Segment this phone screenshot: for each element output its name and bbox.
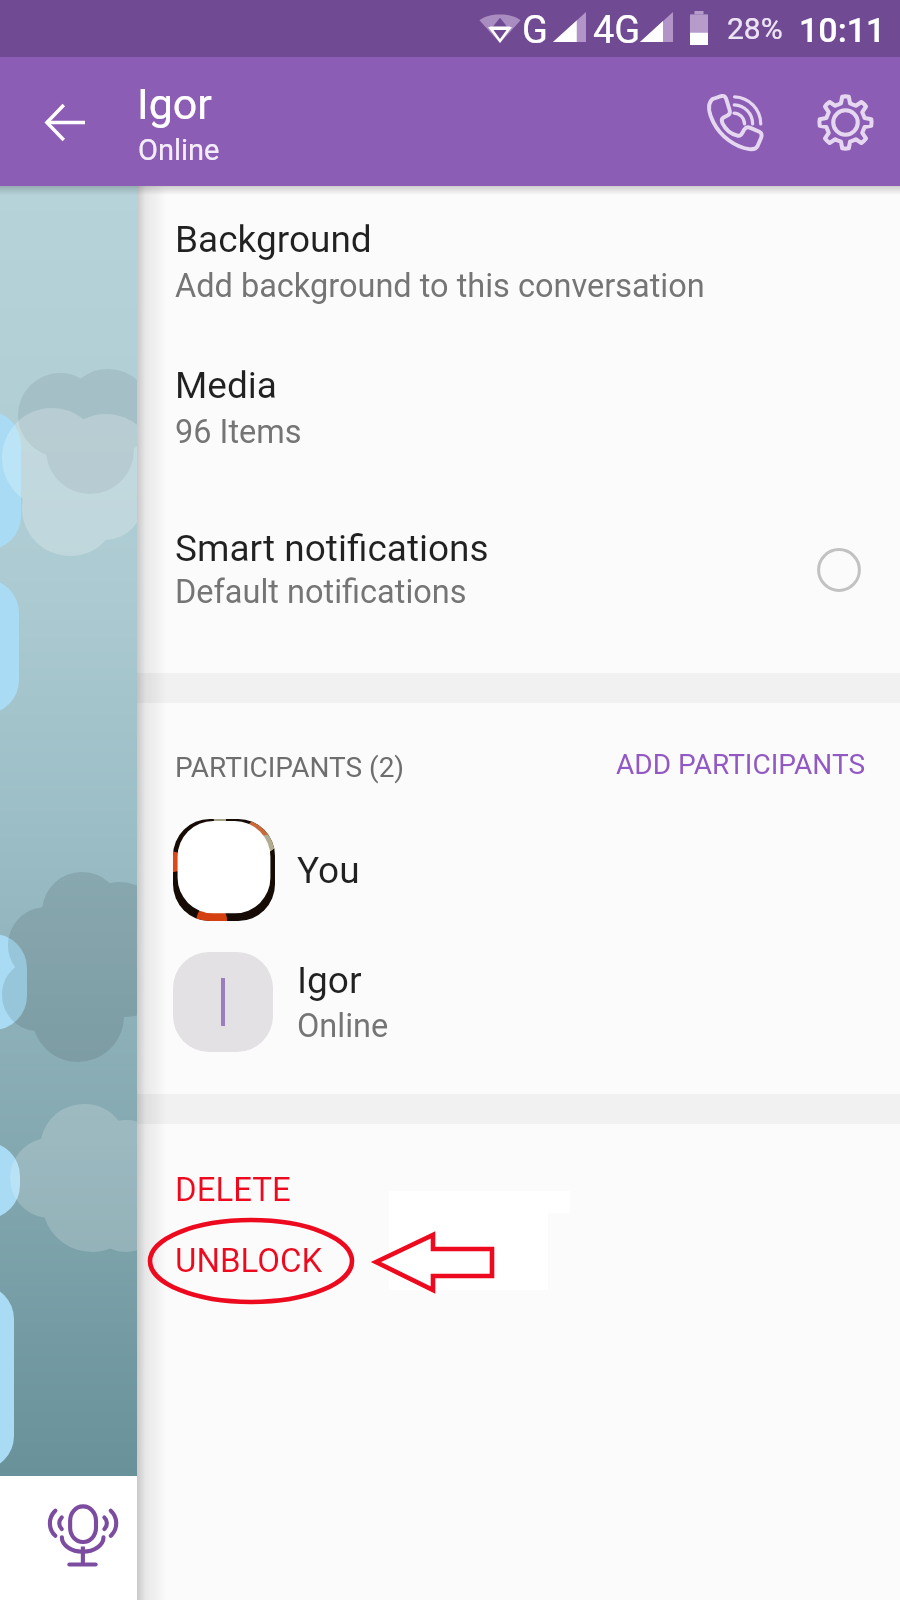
staticText: Media [175,364,277,407]
button[interactable]: Call [687,74,783,170]
button[interactable]: DELETE [161,1163,305,1216]
staticText: You [297,849,360,892]
staticText: 4G [593,8,641,53]
staticText: Igor [137,79,212,129]
button[interactable]: PARTICIPANTS (2) [161,744,419,791]
staticText: 96 Items [175,413,302,451]
staticText: Online [138,133,220,167]
button[interactable]: ADD PARTICIPANTS [602,741,880,788]
staticText: G [522,8,548,53]
staticText: Online [297,1007,389,1045]
staticText: Background [175,218,372,261]
button[interactable]: Background [137,218,900,328]
staticText: DELETE [175,1170,291,1209]
button[interactable]: You [137,816,900,924]
button[interactable]: Media [137,364,900,474]
staticText: ADD PARTICIPANTS [616,748,866,781]
staticText: UNBLOCK [175,1241,323,1280]
button[interactable]: Smart notifications [137,527,900,639]
staticText: PARTICIPANTS (2) [175,751,405,784]
button[interactable]: Igor [137,947,900,1057]
staticText: Igor [297,959,362,1002]
staticText: 28% [727,11,783,46]
button[interactable]: Settings [797,74,893,170]
staticText: Smart notifications [175,527,489,570]
button[interactable]: UNBLOCK [161,1234,337,1287]
staticText: Add background to this conversation [175,267,705,305]
staticText: Default notifications [175,573,467,611]
staticText: 10:11 [799,10,886,50]
button[interactable]: Back [20,77,110,167]
